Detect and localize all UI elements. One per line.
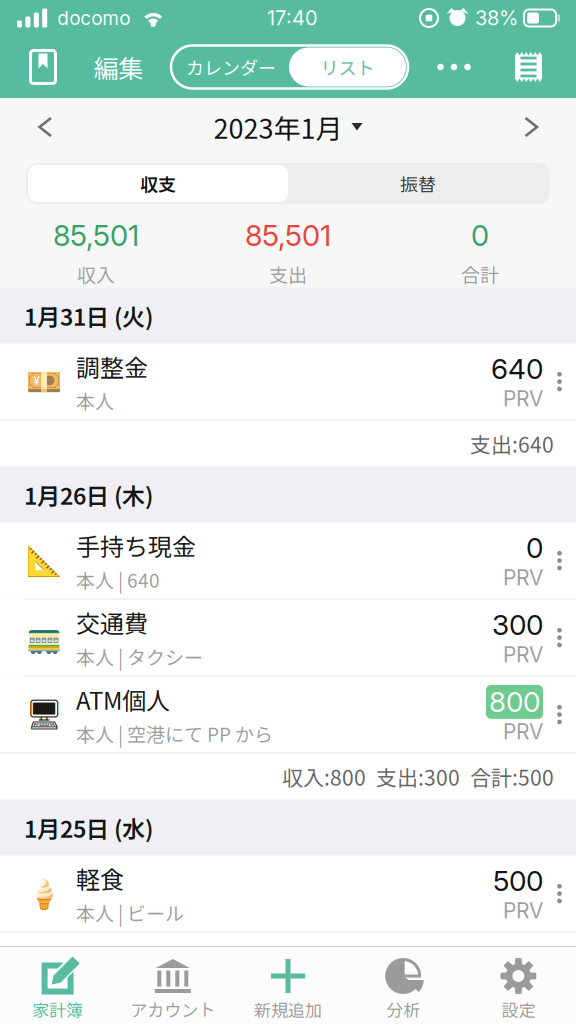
staticText: 1月31日 (火): [24, 299, 153, 332]
button[interactable]: リスト: [289, 47, 406, 86]
staticText: 本人 | 640: [76, 566, 160, 593]
staticText: 家計簿: [32, 997, 83, 1022]
button[interactable]: Next month: [496, 98, 566, 156]
button[interactable]: More options: [408, 36, 500, 98]
button[interactable]: アカウント: [115, 947, 230, 1024]
button[interactable]: 🖥: [0, 677, 576, 753]
staticText: 本人 | ビール: [76, 899, 184, 926]
staticText: 17:40: [267, 6, 318, 30]
button[interactable]: Row actions: [543, 526, 576, 596]
staticText: 本人 | 空港にて PP から: [76, 720, 273, 747]
staticText: 振替: [400, 170, 436, 197]
button[interactable]: 分析: [346, 947, 461, 1024]
staticText: 手持ち現金: [76, 528, 196, 563]
staticText: PRV: [503, 898, 543, 923]
button[interactable]: 📐: [0, 523, 576, 599]
staticText: PRV: [503, 642, 543, 667]
staticText: 1月26日 (木): [24, 478, 153, 511]
staticText: 1月25日 (水): [24, 811, 153, 844]
staticText: 0: [526, 531, 543, 565]
staticText: 800: [489, 685, 540, 719]
staticText: 交通費: [76, 605, 148, 640]
staticText: 🍦: [26, 877, 62, 911]
button[interactable]: Row actions: [543, 680, 576, 750]
button[interactable]: 2023年1月: [213, 98, 362, 156]
staticText: 85,501: [53, 218, 139, 253]
button[interactable]: 新規追加: [230, 947, 346, 1024]
staticText: 📐: [26, 544, 62, 578]
button[interactable]: 家計簿: [0, 947, 115, 1024]
staticText: 新規追加: [254, 997, 322, 1022]
staticText: 本人: [76, 387, 114, 414]
staticText: 500: [493, 864, 543, 898]
staticText: PRV: [503, 386, 543, 411]
staticText: PRV: [503, 565, 543, 590]
staticText: 収入:800 支出:300 合計:500: [282, 761, 554, 792]
button[interactable]: 編集: [66, 36, 171, 98]
staticText: PRV: [503, 719, 543, 744]
button[interactable]: 収支: [28, 165, 288, 202]
button[interactable]: カレンダー: [173, 47, 289, 86]
button[interactable]: Previous month: [10, 98, 80, 156]
staticText: 2023年1月: [213, 107, 342, 147]
button[interactable]: Row actions: [543, 859, 576, 929]
staticText: アカウント: [130, 997, 215, 1022]
staticText: カレンダー: [186, 54, 276, 80]
staticText: docomo: [57, 6, 130, 29]
button[interactable]: 振替: [288, 165, 548, 202]
staticText: 合計: [461, 260, 499, 288]
staticText: 300: [492, 608, 543, 642]
button[interactable]: Receipts: [500, 36, 557, 98]
button[interactable]: 💴: [0, 344, 576, 420]
staticText: 38%: [475, 6, 518, 30]
staticText: 🖥: [25, 698, 62, 732]
staticText: 🚃: [26, 621, 62, 655]
staticText: 本人 | タクシー: [76, 643, 203, 670]
staticText: 収入: [77, 260, 115, 288]
button[interactable]: Row actions: [543, 347, 576, 417]
staticText: 編集: [93, 49, 143, 85]
staticText: ATM個人: [76, 682, 170, 717]
staticText: 分析: [386, 997, 420, 1022]
staticText: 支出:640: [470, 428, 554, 459]
staticText: 収支: [140, 170, 176, 197]
staticText: 設定: [501, 997, 535, 1022]
staticText: リスト: [320, 54, 374, 80]
button[interactable]: Row actions: [543, 603, 576, 673]
button[interactable]: 🚃: [0, 600, 576, 676]
button[interactable]: Bookmarks: [20, 36, 66, 98]
staticText: 💴: [26, 365, 62, 399]
button[interactable]: 設定: [461, 947, 576, 1024]
staticText: 0: [471, 218, 489, 253]
staticText: 支出:500: [470, 940, 554, 971]
button[interactable]: 🍦: [0, 856, 576, 932]
staticText: 軽食: [76, 861, 124, 896]
staticText: 85,501: [245, 218, 331, 253]
staticText: 支出: [269, 260, 307, 288]
staticText: 調整金: [76, 349, 148, 384]
staticText: 640: [491, 352, 543, 386]
